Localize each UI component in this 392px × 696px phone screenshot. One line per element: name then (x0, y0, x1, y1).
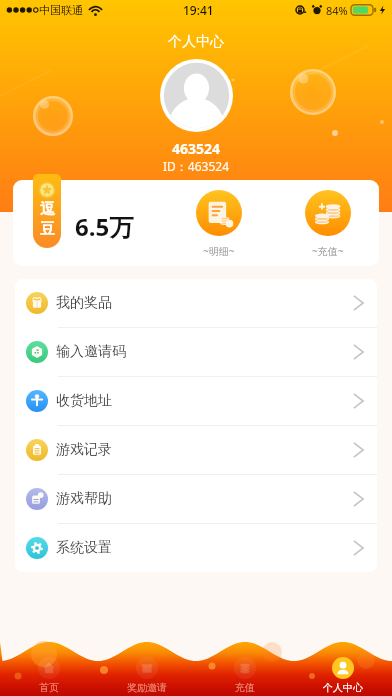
staticText: 豆 (40, 220, 55, 239)
staticText: 84% (326, 3, 348, 18)
staticText: 输入邀请码 (56, 343, 126, 361)
button[interactable]: 个人中心 (294, 626, 392, 696)
staticText: 首页 (39, 681, 59, 694)
staticText: 游戏记录 (56, 441, 112, 459)
staticText: 收货地址 (56, 392, 112, 410)
staticText: 我的奖品 (56, 294, 112, 312)
button[interactable]: 系统设置 (15, 524, 377, 572)
button[interactable]: 输入邀请码 (15, 328, 377, 376)
button[interactable]: 充值 (196, 626, 294, 696)
staticText: ID：463524 (0, 158, 392, 174)
button[interactable]: 我的奖品 (15, 279, 377, 327)
staticText: 19:41 (183, 2, 214, 18)
staticText: ~明细~ (203, 244, 235, 258)
button[interactable]: 奖励邀请 (98, 626, 196, 696)
staticText: 个人中心 (323, 681, 363, 694)
staticText: 个人中心 (0, 33, 392, 51)
staticText: 充值 (235, 681, 255, 694)
staticText: 游戏帮助 (56, 490, 112, 508)
staticText: 6.5万 (75, 210, 134, 243)
staticText: 中国联通 (39, 3, 83, 17)
button[interactable]: 收货地址 (15, 377, 377, 425)
staticText: 系统设置 (56, 539, 112, 557)
button[interactable]: 逗 (33, 174, 61, 248)
button[interactable]: 游戏帮助 (15, 475, 377, 523)
staticText: 奖励邀请 (127, 681, 167, 694)
button[interactable]: 游戏记录 (15, 426, 377, 474)
button[interactable]: 首页 (0, 626, 98, 696)
button[interactable]: ~充值~ (305, 190, 351, 258)
staticText: 463524 (0, 139, 392, 158)
staticText: 逗 (40, 200, 55, 219)
staticText: ~充值~ (312, 244, 344, 258)
button[interactable]: ~明细~ (196, 190, 242, 258)
